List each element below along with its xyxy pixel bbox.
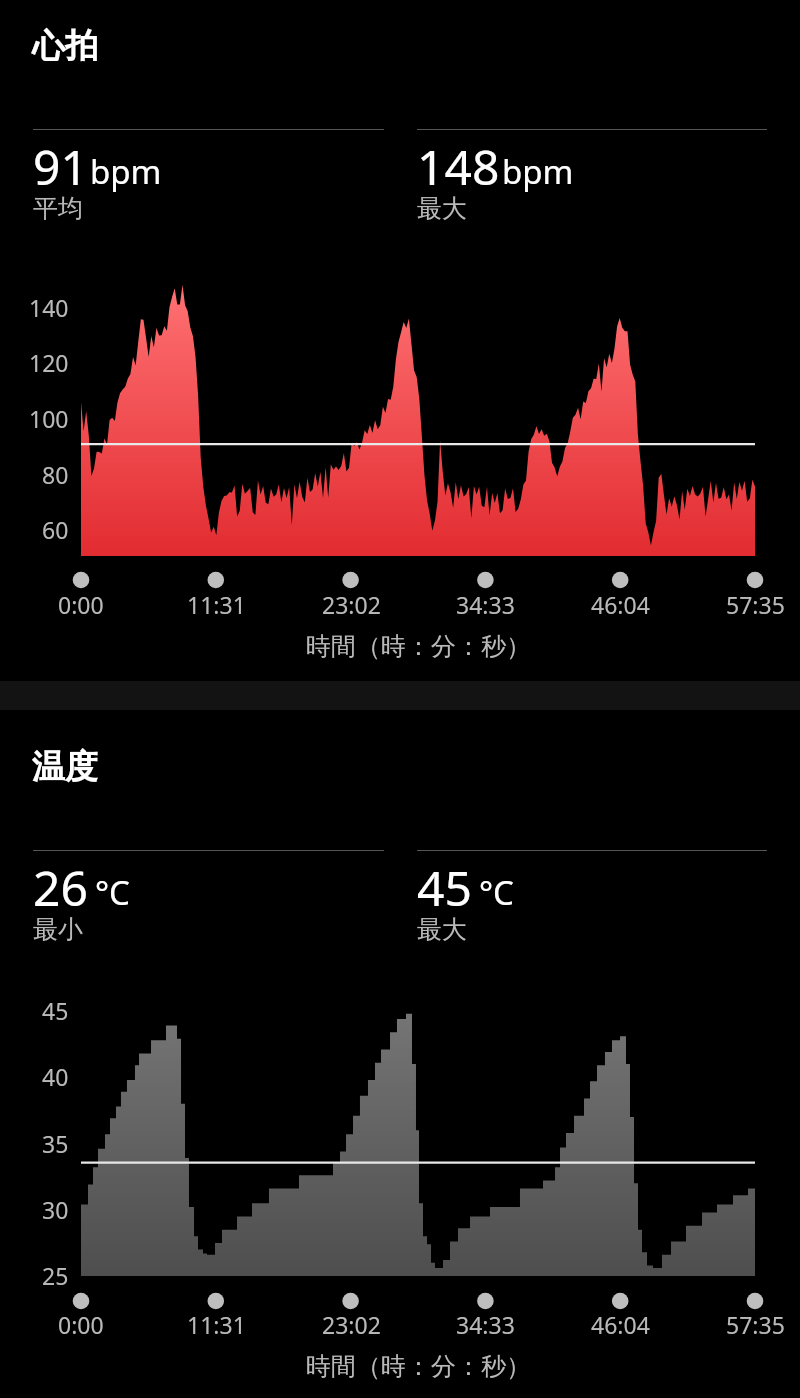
staticText: 80 (42, 459, 69, 490)
staticText: 11:31 (187, 1309, 246, 1340)
staticText: 平均 (33, 193, 83, 224)
staticText: 0:00 (58, 1309, 104, 1340)
staticText: bpm (90, 149, 162, 194)
staticText: 最小 (33, 914, 83, 945)
staticText: 時間（時：分：秒） (306, 631, 531, 662)
staticText: 23:02 (322, 1309, 381, 1340)
staticText: 46:04 (591, 589, 650, 620)
staticText: 57:35 (726, 589, 785, 620)
staticText: 26 (33, 855, 88, 920)
staticText: 時間（時：分：秒） (306, 1351, 531, 1382)
staticText: 100 (29, 403, 69, 434)
button[interactable]: 148 (417, 129, 767, 230)
staticText: 35 (42, 1128, 69, 1159)
staticText: 25 (42, 1260, 69, 1291)
staticText: 11:31 (187, 589, 246, 620)
staticText: 91 (33, 134, 88, 199)
staticText: 140 (29, 292, 69, 323)
staticText: 最大 (417, 193, 467, 224)
staticText: 心拍 (32, 25, 98, 67)
staticText: 23:02 (322, 589, 381, 620)
staticText: 温度 (32, 746, 98, 788)
staticText: 57:35 (726, 1309, 785, 1340)
staticText: °C (479, 870, 514, 915)
button[interactable]: 45 (417, 850, 767, 951)
staticText: bpm (502, 149, 574, 194)
staticText: 45 (42, 995, 69, 1026)
staticText: 30 (42, 1194, 69, 1225)
staticText: 46:04 (591, 1309, 650, 1340)
staticText: 120 (29, 347, 69, 378)
staticText: 148 (417, 134, 500, 199)
staticText: 34:33 (456, 1309, 515, 1340)
staticText: 34:33 (456, 589, 515, 620)
staticText: °C (95, 870, 130, 915)
staticText: 最大 (417, 914, 467, 945)
staticText: 45 (417, 855, 472, 920)
button[interactable]: 26 (33, 850, 384, 951)
button[interactable]: 91 (33, 129, 384, 230)
staticText: 60 (42, 514, 69, 545)
staticText: 0:00 (58, 589, 104, 620)
staticText: 40 (42, 1061, 69, 1092)
